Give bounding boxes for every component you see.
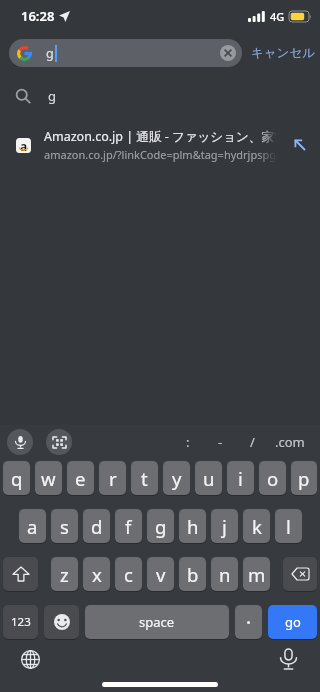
staticText: space <box>139 613 175 631</box>
button[interactable]: c <box>115 557 142 591</box>
staticText: w <box>41 466 56 491</box>
button[interactable] <box>220 45 236 61</box>
button[interactable]: w <box>35 461 62 495</box>
button[interactable]: go <box>268 605 317 639</box>
button[interactable]: g <box>147 509 174 543</box>
staticText: Amazon.co.jp | 通販 - ファッション、家電製品か <box>44 128 296 145</box>
button[interactable]: o <box>259 461 286 495</box>
button[interactable] <box>278 649 299 670</box>
staticText: v <box>156 562 166 587</box>
button[interactable] <box>235 605 262 639</box>
button[interactable]: q <box>3 461 30 495</box>
staticText: u <box>203 466 215 491</box>
staticText: / <box>250 433 255 451</box>
button[interactable]: a <box>19 509 46 543</box>
staticText: go <box>285 613 301 631</box>
button[interactable]: l <box>275 509 302 543</box>
staticText: p <box>298 466 310 491</box>
staticText: d <box>91 514 103 539</box>
staticText: m <box>248 562 266 587</box>
staticText: キャンセル <box>251 45 315 61</box>
button[interactable]: b <box>179 557 206 591</box>
staticText: : <box>186 433 190 451</box>
staticText: a <box>27 514 38 539</box>
button[interactable]: r <box>99 461 126 495</box>
button[interactable]: s <box>51 509 78 543</box>
staticText: b <box>187 562 199 587</box>
staticText: l <box>286 514 291 539</box>
button[interactable]: .com <box>268 433 312 451</box>
button[interactable]: キャンセル <box>251 45 315 61</box>
staticText: f <box>125 514 132 539</box>
staticText: - <box>218 433 223 451</box>
staticText: .com <box>275 433 305 451</box>
button[interactable]: u <box>195 461 222 495</box>
button[interactable] <box>44 605 79 639</box>
button[interactable]: d <box>83 509 110 543</box>
staticText: 123 <box>11 614 31 630</box>
button[interactable] <box>7 429 33 455</box>
button[interactable]: y <box>163 461 190 495</box>
staticText: r <box>109 466 117 491</box>
staticText: amazon.co.jp/?linkCode=plm&tag=hydrjpspg… <box>44 147 296 162</box>
button[interactable]: 123 <box>3 605 38 639</box>
button[interactable]: g <box>9 39 242 67</box>
button[interactable]: / <box>236 433 268 451</box>
staticText: g <box>155 514 167 539</box>
staticText: 16:28 <box>21 7 55 25</box>
button[interactable]: v <box>147 557 174 591</box>
button[interactable]: j <box>211 509 238 543</box>
button[interactable]: n <box>211 557 238 591</box>
staticText: j <box>222 514 227 539</box>
button[interactable]: x <box>83 557 110 591</box>
button[interactable]: k <box>243 509 270 543</box>
staticText: t <box>141 466 148 491</box>
button[interactable]: h <box>179 509 206 543</box>
button[interactable] <box>283 557 317 591</box>
button[interactable]: space <box>85 605 229 639</box>
button[interactable]: f <box>115 509 142 543</box>
button[interactable]: m <box>243 557 270 591</box>
button[interactable]: i <box>227 461 254 495</box>
staticText: o <box>267 466 279 491</box>
staticText: g <box>46 45 54 62</box>
button[interactable]: : <box>172 433 204 451</box>
button[interactable] <box>21 650 40 669</box>
staticText: n <box>219 562 231 587</box>
staticText: e <box>75 466 86 491</box>
staticText: x <box>92 562 102 587</box>
button[interactable]: p <box>291 461 317 495</box>
staticText: a <box>20 138 28 153</box>
button[interactable]: z <box>51 557 78 591</box>
staticText: c <box>124 562 133 587</box>
staticText: h <box>187 514 199 539</box>
staticText: 4G <box>270 9 285 24</box>
button[interactable]: e <box>67 461 94 495</box>
staticText: k <box>252 514 262 539</box>
staticText: g <box>48 87 56 105</box>
button[interactable]: g <box>15 81 320 111</box>
staticText: y <box>172 466 182 491</box>
button[interactable]: t <box>131 461 158 495</box>
button[interactable] <box>3 557 38 591</box>
button[interactable]: - <box>204 433 236 451</box>
staticText: i <box>238 466 243 491</box>
staticText: q <box>11 466 23 491</box>
button[interactable] <box>46 429 72 455</box>
button[interactable] <box>294 139 306 151</box>
staticText: z <box>60 562 69 587</box>
button[interactable]: a <box>0 123 320 167</box>
staticText: s <box>60 514 69 539</box>
